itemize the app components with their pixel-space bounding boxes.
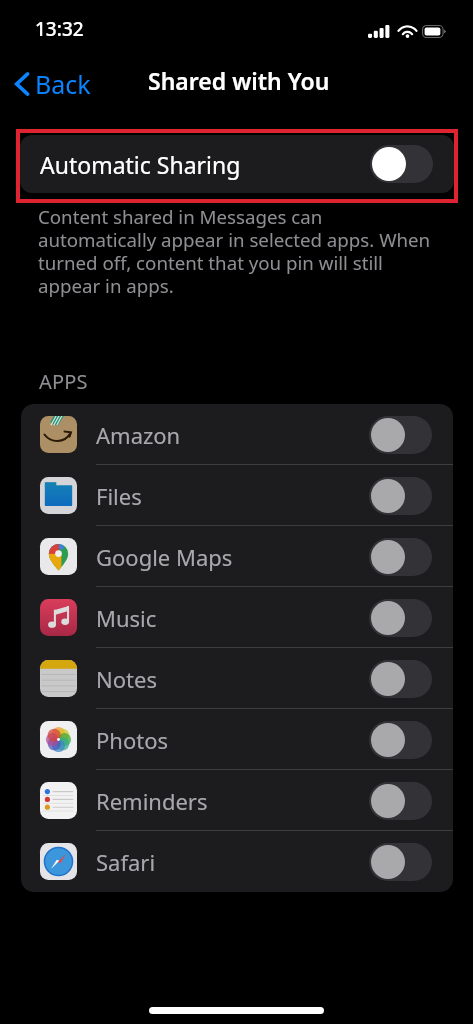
staticText: Amazon bbox=[96, 420, 181, 450]
button[interactable]: Back bbox=[8, 63, 101, 105]
button[interactable]: Files toggle, off bbox=[369, 477, 432, 515]
button[interactable]: Amazon toggle, off bbox=[369, 416, 432, 454]
staticText: 13:32 bbox=[35, 16, 84, 42]
staticText: Content shared in Messages can automatic… bbox=[38, 204, 434, 299]
staticText: Shared with You bbox=[148, 65, 330, 96]
button[interactable]: Reminders toggle, off bbox=[369, 782, 432, 820]
staticText: Reminders bbox=[96, 786, 208, 816]
staticText: Safari bbox=[96, 847, 156, 877]
staticText: Automatic Sharing bbox=[40, 149, 241, 180]
button[interactable]: Reminders bbox=[21, 770, 453, 831]
staticText: Back bbox=[35, 67, 91, 101]
staticText: Notes bbox=[96, 664, 157, 694]
button[interactable]: Amazon bbox=[21, 404, 453, 465]
button[interactable]: Music bbox=[21, 587, 453, 648]
button[interactable]: Google Maps toggle, off bbox=[369, 538, 432, 576]
staticText: APPS bbox=[39, 368, 88, 395]
staticText: Photos bbox=[96, 725, 169, 755]
button[interactable]: Automatic Sharing toggle, on bbox=[370, 145, 433, 183]
button[interactable]: Notes toggle, off bbox=[369, 660, 432, 698]
staticText: Music bbox=[96, 603, 157, 633]
staticText: Google Maps bbox=[96, 542, 233, 572]
button[interactable]: Music toggle, off bbox=[369, 599, 432, 637]
button[interactable]: Google Maps bbox=[21, 526, 453, 587]
button[interactable]: Safari bbox=[21, 831, 453, 892]
button[interactable]: Files bbox=[21, 465, 453, 526]
button[interactable]: Photos toggle, off bbox=[369, 721, 432, 759]
button[interactable]: Automatic Sharing bbox=[20, 135, 454, 193]
button[interactable]: Photos bbox=[21, 709, 453, 770]
button[interactable]: Safari toggle, off bbox=[369, 843, 432, 881]
button[interactable]: Notes bbox=[21, 648, 453, 709]
staticText: Files bbox=[96, 481, 142, 511]
